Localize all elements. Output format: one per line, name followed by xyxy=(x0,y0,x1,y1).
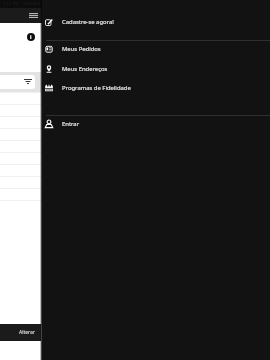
button[interactable]: Meus Pedidos xyxy=(42,40,270,58)
staticText: Meus Endereços xyxy=(62,65,108,73)
button[interactable]: Programas de Fidelidade xyxy=(42,79,270,97)
button[interactable] xyxy=(0,164,270,176)
staticText: Entrar xyxy=(62,120,80,128)
button[interactable]: Open navigation drawer xyxy=(27,11,39,20)
button[interactable] xyxy=(0,152,270,164)
staticText: i xyxy=(30,34,32,41)
button[interactable] xyxy=(0,128,270,140)
staticText: 9:15 PM 100 KB/S •• xyxy=(3,1,47,7)
staticText: Alterar xyxy=(19,329,35,336)
button[interactable] xyxy=(0,140,270,152)
button[interactable]: Information xyxy=(27,33,35,41)
button[interactable] xyxy=(0,104,270,116)
staticText: Meus Pedidos xyxy=(62,45,101,53)
button[interactable] xyxy=(0,116,270,128)
button[interactable]: Alterar xyxy=(0,324,41,341)
button[interactable] xyxy=(0,176,270,188)
button[interactable]: Entrar xyxy=(42,115,270,133)
button[interactable]: Cadastre-se agora! xyxy=(42,13,270,31)
staticText: Cadastre-se agora! xyxy=(62,18,114,26)
button[interactable] xyxy=(0,92,270,104)
staticText: Programas de Fidelidade xyxy=(62,84,131,92)
button[interactable] xyxy=(0,188,270,200)
button[interactable] xyxy=(0,200,270,212)
button[interactable]: Filter xyxy=(0,75,35,89)
button[interactable]: Meus Endereços xyxy=(42,60,270,78)
